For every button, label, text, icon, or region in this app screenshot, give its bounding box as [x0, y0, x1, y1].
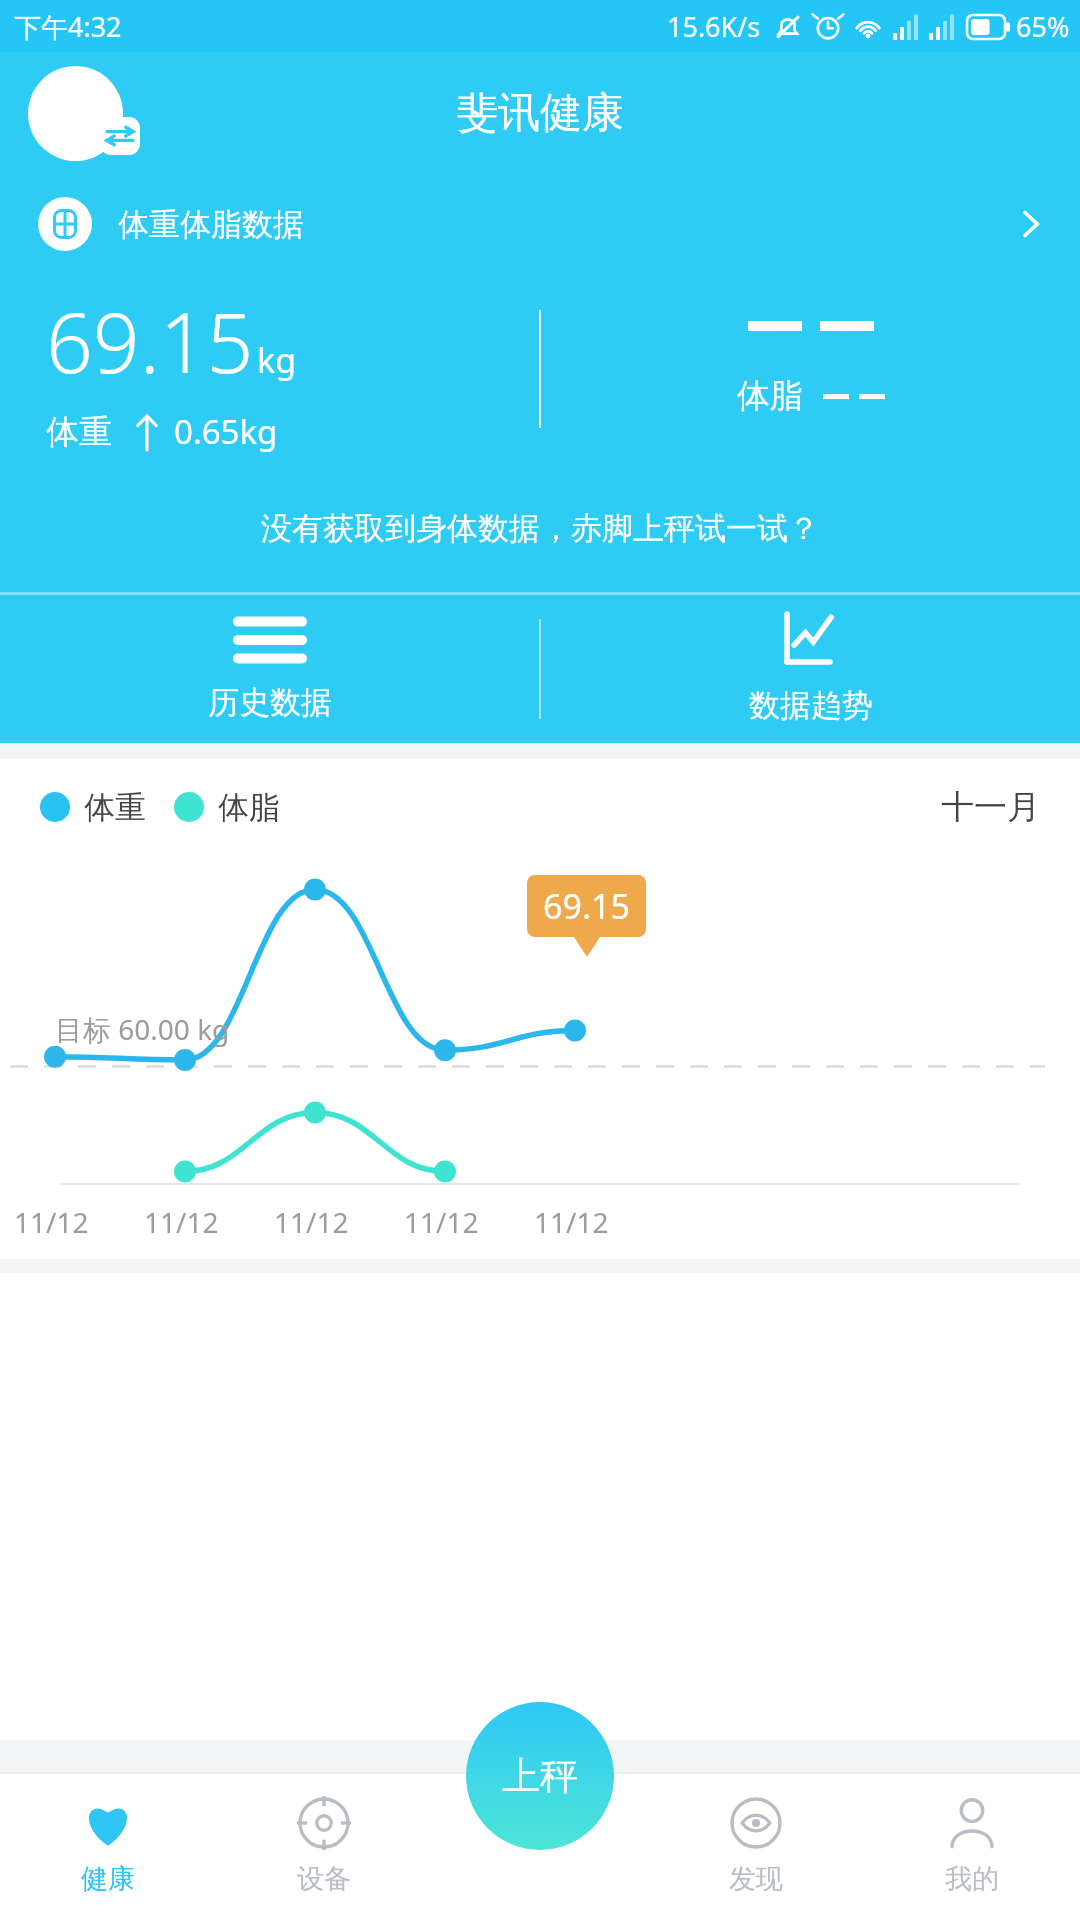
staticText: 69.15 [543, 883, 630, 929]
staticText: 数据趋势 [749, 686, 873, 725]
button[interactable]: 上秤 [466, 1702, 614, 1850]
button[interactable]: Profile avatar [28, 63, 148, 163]
staticText: kg [257, 337, 297, 383]
staticText: 体脂 [737, 375, 803, 417]
staticText: 11/12 [144, 1203, 219, 1241]
staticText: 11/12 [404, 1203, 479, 1241]
staticText: 65% [1016, 8, 1070, 45]
button[interactable]: 体重体脂数据 [0, 174, 1080, 274]
button[interactable]: 我的 [864, 1772, 1080, 1920]
staticText: 健康 [81, 1862, 135, 1896]
button[interactable]: 历史数据 [0, 595, 539, 743]
staticText: 体重 [84, 788, 146, 827]
staticText: 下午4:32 [14, 8, 122, 45]
staticText: 11/12 [14, 1203, 89, 1241]
staticText: 11/12 [534, 1203, 609, 1241]
staticText: 0.65kg [174, 409, 278, 454]
staticText: 十一月 [941, 786, 1040, 828]
staticText: 我的 [945, 1862, 999, 1896]
button[interactable]: 设备 [216, 1772, 432, 1920]
staticText: 69.15 [46, 285, 254, 397]
staticText: 设备 [297, 1862, 351, 1896]
staticText: 体脂 [218, 788, 280, 827]
staticText: 15.6K/s [667, 8, 761, 45]
staticText: 斐讯健康 [456, 87, 624, 140]
staticText: 目标 60.00 kg [55, 1010, 230, 1048]
staticText: 上秤 [502, 1752, 578, 1800]
staticText: 没有获取到身体数据，赤脚上秤试一试？ [261, 509, 819, 548]
staticText: 发现 [729, 1862, 783, 1896]
button[interactable]: 发现 [648, 1772, 864, 1920]
staticText: 历史数据 [208, 683, 332, 722]
staticText: 体重体脂数据 [118, 205, 304, 244]
button[interactable]: 健康 [0, 1772, 216, 1920]
button[interactable]: 数据趋势 [541, 595, 1080, 743]
staticText: 11/12 [274, 1203, 349, 1241]
staticText: 体重 [46, 411, 112, 453]
